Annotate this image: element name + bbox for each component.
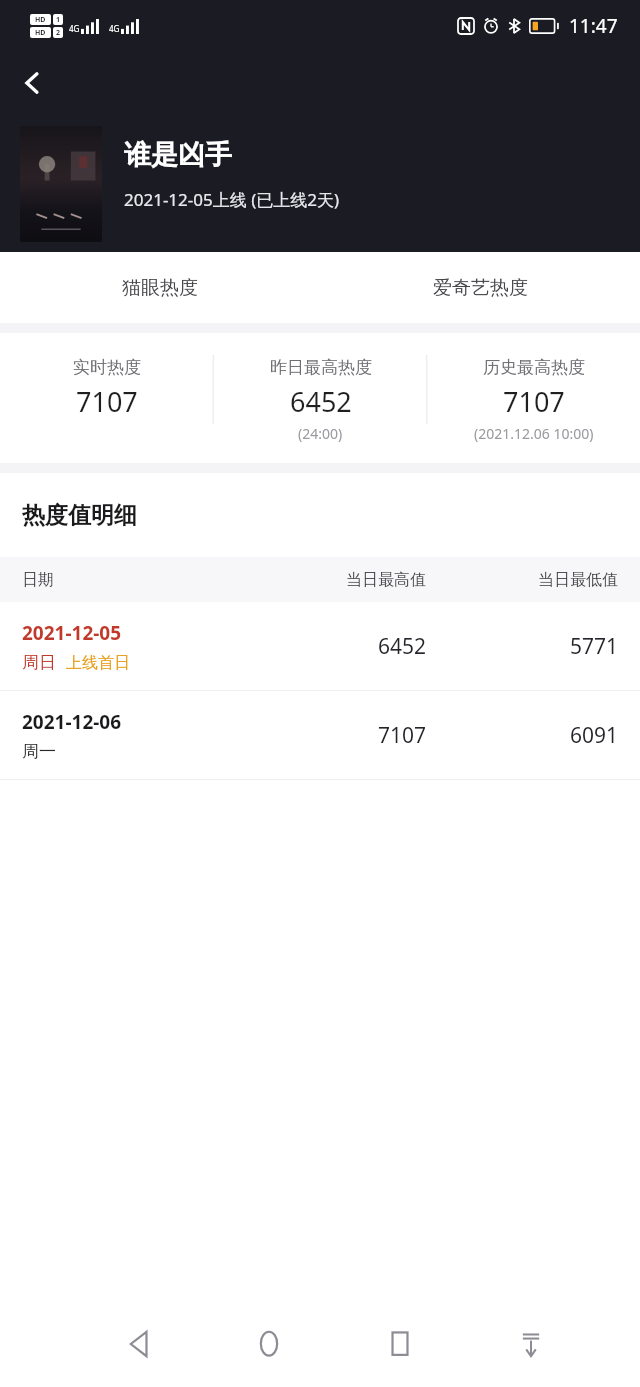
staticText: 6452	[290, 383, 352, 420]
button[interactable]: Recents	[371, 1315, 429, 1373]
button[interactable]: 实时热度	[0, 333, 214, 463]
staticText: 历史最高热度	[483, 357, 585, 378]
staticText: 实时热度	[73, 357, 141, 378]
staticText: 当日最高值	[234, 570, 426, 590]
button[interactable]: 2021-12-06	[0, 691, 640, 779]
staticText: 周一	[22, 741, 56, 762]
staticText: 热度值明细	[22, 501, 137, 530]
staticText: 爱奇艺热度	[433, 276, 528, 300]
staticText: 猫眼热度	[122, 276, 198, 300]
button[interactable]: Hide navigation bar	[502, 1315, 560, 1373]
staticText: 11:47	[569, 13, 618, 39]
staticText: 2021-12-05	[22, 620, 122, 646]
staticText: 2021-12-05上线 (已上线2天)	[124, 188, 340, 211]
staticText: 4G	[109, 23, 120, 34]
staticText: HD	[35, 15, 46, 25]
button[interactable]: 2021-12-05	[0, 602, 640, 690]
staticText: 4G	[69, 23, 80, 34]
staticText: HD	[35, 28, 46, 38]
staticText: 7107	[503, 383, 565, 420]
button[interactable]: Home	[240, 1315, 298, 1373]
staticText: 6452	[234, 632, 426, 661]
button[interactable]: 历史最高热度	[427, 333, 640, 463]
staticText: 谁是凶手	[124, 138, 232, 172]
staticText: 7107	[234, 721, 426, 750]
button[interactable]: 爱奇艺热度	[320, 252, 640, 323]
button[interactable]: Back	[6, 56, 60, 110]
staticText: (2021.12.06 10:00)	[474, 424, 594, 443]
staticText: 当日最低值	[426, 570, 618, 590]
staticText: (24:00)	[298, 424, 343, 443]
staticText: 日期	[22, 570, 234, 590]
button[interactable]: 昨日最高热度	[214, 333, 427, 463]
staticText: 2021-12-06	[22, 709, 122, 735]
button[interactable]: Back	[110, 1315, 168, 1373]
staticText: 昨日最高热度	[270, 357, 372, 378]
button[interactable]: 猫眼热度	[0, 252, 320, 323]
staticText: 上线首日	[66, 653, 130, 673]
staticText: 7107	[76, 383, 138, 420]
staticText: 2	[56, 28, 61, 38]
staticText: 6091	[426, 721, 618, 750]
staticText: 周日	[22, 652, 56, 673]
staticText: 1	[56, 15, 61, 25]
staticText: 5771	[426, 632, 618, 661]
